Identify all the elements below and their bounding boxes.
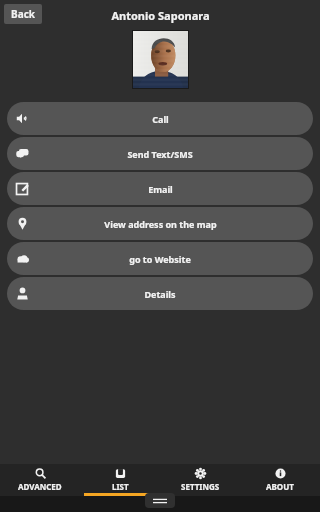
staticText: Call (152, 113, 169, 125)
button[interactable]: View address on the map (7, 207, 313, 240)
button[interactable]: ADVANCED (0, 464, 80, 496)
staticText: Antonio Saponara (111, 8, 210, 23)
staticText: View address on the map (104, 218, 217, 230)
staticText: Email (148, 183, 173, 195)
button[interactable]: SETTINGS (160, 464, 240, 496)
button[interactable]: Call (7, 102, 313, 135)
button[interactable]: LIST (80, 464, 160, 496)
staticText: LIST (112, 481, 129, 492)
staticText: SETTINGS (181, 481, 220, 492)
staticText: Details (144, 288, 176, 300)
staticText: Send Text/SMS (127, 148, 193, 160)
button[interactable]: Email (7, 172, 313, 205)
button[interactable]: Send Text/SMS (7, 137, 313, 170)
staticText: Back (11, 7, 35, 21)
staticText: ABOUT (266, 481, 294, 492)
button[interactable]: Details (7, 277, 313, 310)
button[interactable]: Menu (145, 493, 175, 508)
button[interactable]: Back (4, 4, 42, 24)
staticText: go to Website (129, 253, 191, 265)
button[interactable]: ABOUT (240, 464, 320, 496)
staticText: ADVANCED (18, 481, 62, 492)
button[interactable]: go to Website (7, 242, 313, 275)
